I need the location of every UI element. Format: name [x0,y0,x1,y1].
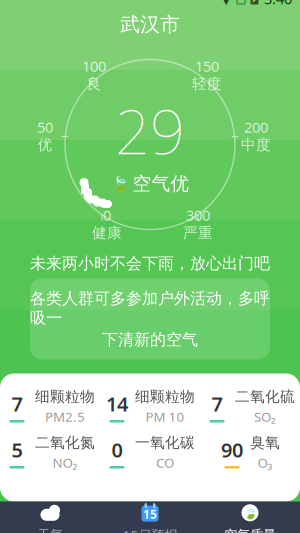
staticText: 优 [37,136,52,154]
staticText: 下清新的空气 [102,330,198,349]
staticText: 臭氧 [250,434,280,452]
staticText: ⚡ [249,0,259,3]
staticText: 严重 [183,224,213,242]
staticText: 细颗粒物 [35,388,95,406]
staticText: O₃ [257,454,272,471]
staticText: PM2.5 [45,408,85,425]
staticText: 🍃 [242,506,257,520]
button[interactable]: 15 [100,501,200,533]
button[interactable]: 天气 [0,501,100,533]
staticText: 0 [111,436,122,463]
staticText: 细颗粒物 [135,388,195,406]
staticText: 中度 [241,136,271,154]
staticText: 150 [195,56,219,76]
staticText: 300 [186,205,210,225]
staticText: 未来两小时不会下雨，放心出门吧 [30,254,270,273]
staticText: 0 [103,205,111,225]
staticText: 武汉市 [120,12,180,37]
staticText: 14 [106,390,128,417]
staticText: CO [156,454,174,471]
staticText: 7 [11,390,22,417]
staticText: 良 [86,75,101,93]
staticText: 7 [211,390,222,417]
staticText: 90 [221,436,243,463]
button[interactable]: 🍃 [200,501,300,533]
staticText: 29 [115,90,185,171]
staticText: NO₂ [52,454,77,471]
staticText: 15日预报 [122,526,177,533]
staticText: SO₂ [254,408,276,425]
staticText: 一氧化碳 [135,434,195,452]
staticText: 轻度 [192,75,222,93]
staticText: 5 [11,436,22,463]
staticText: 200 [244,117,268,137]
staticText: 健康 [92,224,122,242]
staticText: 二氧化硫 [235,388,295,406]
staticText: 3:40 [264,0,292,8]
staticText: 15 [143,506,157,522]
staticText: PM 10 [145,408,184,425]
staticText: 天气 [37,527,63,533]
staticText: 空气质量 [224,527,276,533]
staticText: 空气优 [132,172,189,195]
staticText: 各类人群可多参加户外活动，多呼吸一 [30,288,270,328]
staticText: 二氧化氮 [35,434,95,452]
staticText: ▼ [220,0,231,7]
staticText: 100 [82,56,106,76]
staticText: 50 [37,117,53,137]
staticText: 🍃 [110,175,128,192]
